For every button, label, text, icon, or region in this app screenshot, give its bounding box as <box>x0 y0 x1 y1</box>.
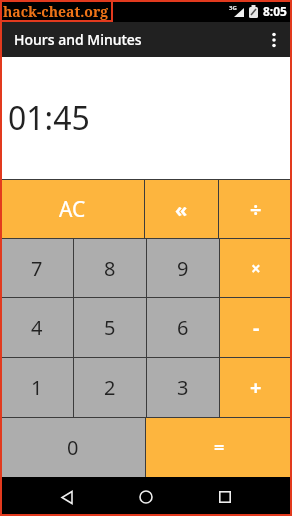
staticText: 9 <box>177 255 189 282</box>
button[interactable]: 2 <box>74 358 146 417</box>
staticText: 3G <box>229 4 237 12</box>
staticText: Hours and Minutes <box>14 30 142 49</box>
staticText: × <box>251 257 261 280</box>
button[interactable]: « <box>145 180 218 238</box>
button[interactable]: AC <box>0 180 144 238</box>
button[interactable]: 1 <box>0 358 73 417</box>
button[interactable]: × <box>220 239 292 297</box>
staticText: = <box>214 435 225 460</box>
staticText: 7 <box>31 255 43 282</box>
staticText: 8:05 <box>263 3 287 19</box>
button[interactable] <box>266 32 282 48</box>
staticText: AC <box>59 195 86 224</box>
staticText: 0 <box>67 434 79 461</box>
staticText: - <box>253 314 260 341</box>
button[interactable]: 6 <box>147 298 219 357</box>
button[interactable]: 0 <box>0 418 145 477</box>
staticText: + <box>250 374 262 401</box>
staticText: 5 <box>104 314 116 341</box>
staticText: 4 <box>31 314 43 341</box>
staticText: hack-cheat.org <box>3 2 109 21</box>
button[interactable]: 7 <box>0 239 73 297</box>
button[interactable] <box>134 485 158 509</box>
staticText: 6 <box>177 314 189 341</box>
button[interactable]: 4 <box>0 298 73 357</box>
staticText: 2 <box>104 374 116 401</box>
button[interactable] <box>213 485 237 509</box>
button[interactable]: - <box>220 298 292 357</box>
button[interactable]: 9 <box>147 239 219 297</box>
button[interactable]: = <box>146 418 292 477</box>
staticText: 8 <box>104 255 116 282</box>
staticText: 1 <box>31 374 43 401</box>
staticText: ÷ <box>250 196 262 223</box>
button[interactable]: 5 <box>74 298 146 357</box>
button[interactable]: + <box>220 358 292 417</box>
staticText: « <box>175 196 188 223</box>
button[interactable] <box>55 485 79 509</box>
staticText: 01:45 <box>8 96 90 140</box>
button[interactable]: 8 <box>74 239 146 297</box>
button[interactable]: 3 <box>147 358 219 417</box>
staticText: 3 <box>177 374 189 401</box>
button[interactable]: ÷ <box>219 180 292 238</box>
